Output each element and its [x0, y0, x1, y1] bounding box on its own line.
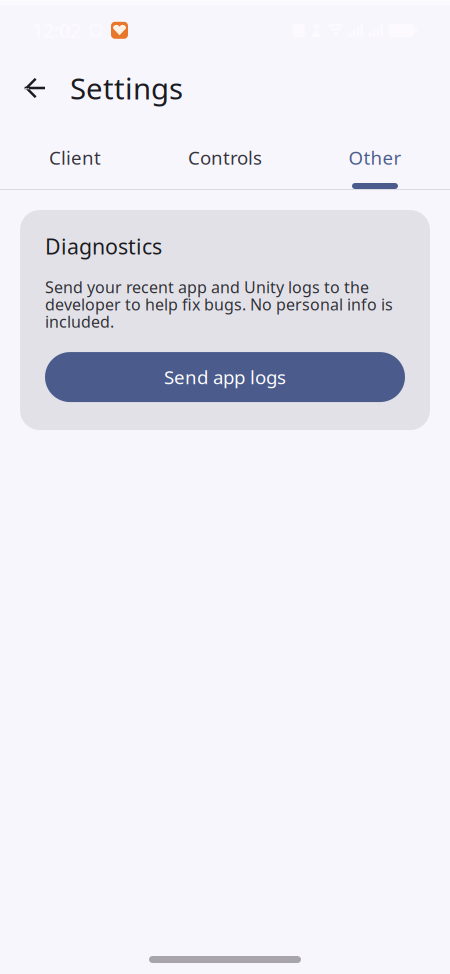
staticText: developer to help fix bugs. No personal … [45, 294, 393, 315]
staticText: Client [49, 145, 101, 170]
button[interactable]: Back [12, 65, 58, 111]
staticText: Controls [188, 145, 262, 170]
staticText: Other [348, 145, 401, 170]
staticText: Send app logs [164, 365, 286, 389]
button[interactable]: Other [300, 124, 450, 189]
staticText: included. [45, 311, 114, 332]
staticText: Settings [70, 68, 183, 107]
staticText: Send your recent app and Unity logs to t… [45, 276, 369, 297]
staticText: Diagnostics [45, 232, 162, 260]
button[interactable]: Controls [150, 124, 300, 189]
button[interactable]: Send app logs [45, 352, 405, 402]
button[interactable]: Client [0, 124, 150, 189]
